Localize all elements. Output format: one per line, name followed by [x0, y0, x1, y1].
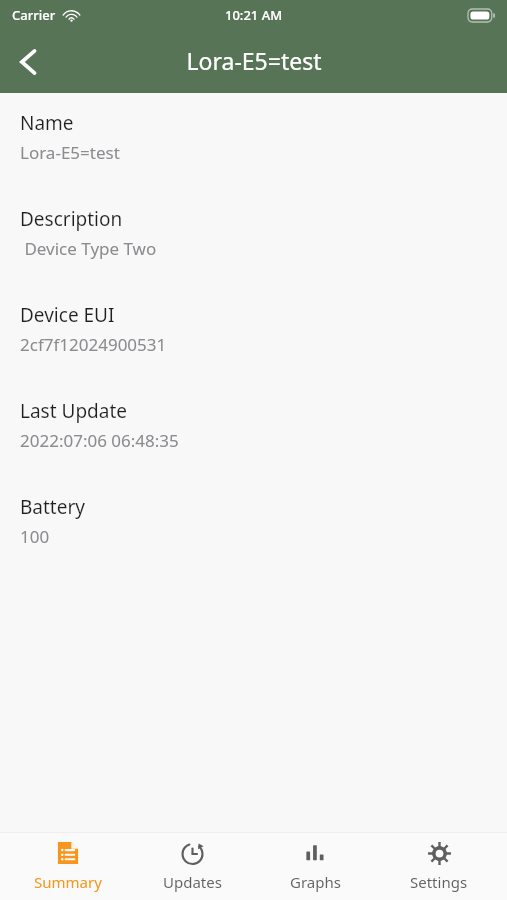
staticText: Lora-E5=test	[186, 45, 322, 76]
staticText: Description	[20, 206, 123, 232]
button[interactable]: Summary	[13, 832, 123, 900]
staticText: Name	[20, 110, 74, 136]
button[interactable]: Graphs	[260, 832, 370, 900]
staticText: Settings	[410, 872, 468, 892]
staticText: 100	[20, 525, 50, 548]
staticText: Graphs	[290, 872, 341, 892]
staticText: 10:21 AM	[225, 6, 283, 24]
staticText: Carrier	[12, 6, 56, 24]
staticText: 2022:07:06 06:48:35	[20, 429, 179, 452]
staticText: Last Update	[20, 398, 128, 424]
staticText: Lora-E5=test	[20, 141, 120, 164]
button[interactable]: Updates	[137, 832, 247, 900]
staticText: Device Type Two	[20, 237, 157, 260]
staticText: Updates	[163, 872, 222, 892]
button[interactable]: Back	[0, 34, 56, 90]
button[interactable]: Settings	[384, 832, 494, 900]
staticText: Battery	[20, 494, 85, 520]
staticText: Device EUI	[20, 302, 115, 328]
staticText: 2cf7f12024900531	[20, 333, 167, 356]
staticText: Summary	[34, 872, 102, 892]
